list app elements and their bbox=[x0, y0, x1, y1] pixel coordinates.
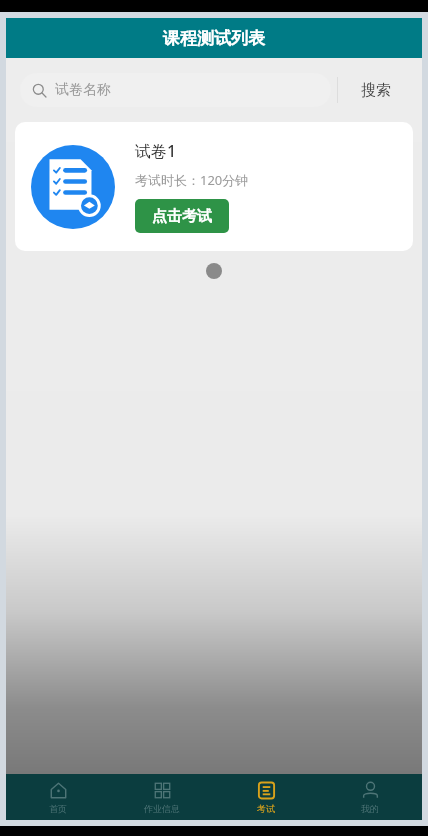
staticText: 考试时长：120分钟 bbox=[135, 171, 249, 189]
other: 我的 bbox=[361, 781, 380, 800]
button[interactable]: 试卷1 bbox=[15, 122, 413, 251]
staticText: 首页 bbox=[49, 803, 67, 814]
staticText: 点击考试 bbox=[152, 207, 212, 226]
button[interactable]: 搜索 bbox=[344, 73, 408, 107]
staticText: 考试 bbox=[257, 803, 275, 814]
other: 作业信息 bbox=[153, 781, 172, 800]
staticText: 课程测试列表 bbox=[163, 28, 265, 49]
button[interactable]: 考试 bbox=[214, 774, 318, 820]
staticText: 试卷1 bbox=[135, 140, 177, 162]
button[interactable]: 首页 bbox=[6, 774, 110, 820]
staticText: 作业信息 bbox=[144, 803, 180, 814]
staticText: 搜索 bbox=[361, 81, 391, 100]
button[interactable]: 作业信息 bbox=[110, 774, 214, 820]
staticText: 试卷名称 bbox=[55, 81, 111, 99]
other: 考试 bbox=[257, 781, 276, 800]
other: 首页 bbox=[49, 781, 68, 800]
button[interactable]: 点击考试 bbox=[135, 199, 229, 233]
button[interactable]: 试卷名称 bbox=[20, 73, 331, 107]
button[interactable]: 我的 bbox=[318, 774, 422, 820]
staticText: 我的 bbox=[361, 803, 379, 814]
